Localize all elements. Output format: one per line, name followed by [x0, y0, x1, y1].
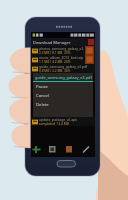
- staticText: 1.1 MB / 4.2 MB 26%: [39, 60, 71, 64]
- staticText: Delete: [36, 102, 49, 108]
- staticText: guide_samsung_galaxy_s3.pdf: [35, 75, 92, 80]
- staticText: photos_samsung_galaxy_s3.zip: [39, 46, 85, 51]
- staticText: completed 12.4 MB: [39, 122, 69, 126]
- button[interactable]: Downloads: [65, 145, 74, 154]
- button[interactable]: Files: [48, 145, 57, 154]
- staticText: Download Manager: [33, 40, 71, 45]
- button[interactable]: music_album_2013_best.zip: [31, 55, 95, 64]
- button[interactable]: Download Manager: [31, 38, 95, 46]
- button[interactable]: Tools: [82, 145, 91, 154]
- button[interactable]: Add download: [32, 145, 41, 154]
- staticText: guide_samsung_galaxy_s3.pdf: [39, 64, 88, 69]
- staticText: music_album_2013_best.zip: [39, 55, 84, 60]
- button[interactable]: Cancel: [33, 91, 93, 100]
- staticText: 0.8 MB / 2.2 MB 36%: [39, 69, 71, 73]
- button[interactable]: photos_samsung_galaxy_s3.zip: [31, 46, 95, 55]
- staticText: Cancel: [36, 93, 50, 99]
- button[interactable]: Delete: [33, 100, 93, 109]
- staticText: Pause: [36, 84, 48, 90]
- button[interactable]: update_package_v2.apk: [31, 117, 95, 126]
- button[interactable]: guide_samsung_galaxy_s3.pdf: [31, 64, 95, 73]
- staticText: 2.3 MB / 8.1 MB 35%: [39, 51, 71, 55]
- button[interactable]: Pause: [33, 82, 93, 91]
- staticText: update_package_v2.apk: [39, 117, 78, 122]
